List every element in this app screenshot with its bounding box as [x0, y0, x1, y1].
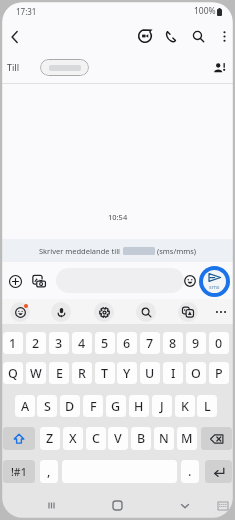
button[interactable]: Search	[136, 302, 156, 322]
button[interactable]: 6	[117, 332, 137, 354]
button[interactable]: Stickers	[178, 302, 198, 322]
button[interactable]: Z	[40, 427, 60, 450]
button[interactable]: Gallery	[29, 272, 48, 290]
staticText: D	[65, 398, 75, 415]
button[interactable]: 9	[186, 332, 206, 354]
button[interactable]: Search	[187, 25, 209, 47]
staticText: 1	[9, 335, 17, 352]
staticText: E	[56, 365, 63, 382]
staticText: Y	[123, 365, 131, 382]
button[interactable]: L	[197, 395, 217, 417]
button[interactable]: 7	[140, 332, 160, 354]
staticText: H	[134, 398, 144, 415]
staticText: U	[145, 365, 155, 382]
button[interactable]: W	[26, 362, 46, 384]
button[interactable]: P	[209, 362, 229, 384]
button[interactable]: E	[49, 362, 69, 384]
staticText: 10:54	[108, 212, 128, 222]
staticText: J	[160, 398, 164, 415]
button[interactable]: 1	[3, 332, 23, 354]
button[interactable]: .	[181, 460, 199, 483]
staticText: N	[159, 430, 169, 447]
button[interactable]: Settings	[94, 302, 114, 322]
button[interactable]: B	[131, 427, 151, 450]
staticText: sms	[209, 283, 220, 290]
button[interactable]: Q	[3, 362, 23, 384]
staticText: V	[114, 430, 122, 447]
button[interactable]: O	[186, 362, 206, 384]
button[interactable]: Add attachment	[6, 272, 24, 290]
button[interactable]: H	[129, 395, 149, 417]
staticText: ,	[47, 463, 51, 480]
button[interactable]: U	[140, 362, 160, 384]
button[interactable]: 3	[49, 332, 69, 354]
button[interactable]: X	[63, 427, 83, 450]
staticText: !#1	[11, 465, 27, 479]
staticText: B	[137, 430, 146, 447]
button[interactable]: Video call	[134, 25, 156, 47]
button[interactable]: Recents	[42, 496, 61, 515]
staticText: 100%	[194, 5, 216, 17]
staticText: K	[181, 398, 189, 415]
button[interactable]: Call	[159, 25, 181, 47]
button[interactable]: M	[177, 427, 197, 450]
button[interactable]: I	[163, 362, 183, 384]
button[interactable]: T	[95, 362, 115, 384]
button[interactable]: 8	[163, 332, 183, 354]
button[interactable]: Emoji	[183, 274, 197, 288]
button[interactable]: Hide keyboard	[175, 496, 194, 515]
button[interactable]: C	[86, 427, 106, 450]
staticText: (sms/mms)	[157, 246, 197, 256]
button[interactable]: Home	[108, 496, 127, 515]
button[interactable]: More options	[214, 25, 234, 47]
button[interactable]: F	[83, 395, 103, 417]
button[interactable]: !#1	[3, 460, 35, 483]
staticText: .	[188, 463, 192, 480]
button[interactable]: G	[106, 395, 126, 417]
button[interactable]: Keyboard settings	[214, 498, 231, 513]
button[interactable]: 5	[95, 332, 115, 354]
button[interactable]: 2	[26, 332, 46, 354]
staticText: I	[171, 365, 176, 382]
button[interactable]: J	[152, 395, 172, 417]
button[interactable]: ,	[40, 460, 58, 483]
staticText: Skriver meddelande till	[39, 246, 121, 256]
button[interactable]: Send SMS	[199, 266, 230, 297]
button[interactable]: Voice input	[51, 302, 71, 322]
staticText: O	[191, 365, 201, 382]
button[interactable]: Add recipient	[209, 58, 229, 78]
staticText: G	[111, 398, 121, 415]
staticText: Q	[8, 365, 18, 382]
staticText: 2	[32, 335, 40, 352]
button[interactable]: 4	[72, 332, 92, 354]
staticText: A	[21, 398, 30, 415]
staticText: 5	[101, 335, 109, 352]
button[interactable]: N	[154, 427, 174, 450]
button[interactable]: More	[214, 305, 228, 319]
staticText: 9	[192, 335, 200, 352]
staticText: 4	[78, 335, 86, 352]
staticText: W	[30, 365, 42, 382]
button[interactable]: R	[72, 362, 92, 384]
staticText: 6	[123, 335, 131, 352]
staticText: 7	[146, 335, 154, 352]
staticText: 0	[215, 335, 223, 352]
button[interactable]: A	[15, 395, 35, 417]
staticText: R	[78, 365, 86, 382]
button[interactable]: Shift	[3, 427, 35, 450]
button[interactable]: D	[60, 395, 80, 417]
button[interactable]	[40, 59, 89, 76]
button[interactable]: Enter	[205, 460, 232, 483]
staticText: C	[92, 430, 100, 447]
button[interactable]: S	[37, 395, 57, 417]
button[interactable]: Emoji	[10, 302, 30, 322]
button[interactable]: K	[175, 395, 195, 417]
button[interactable]: Y	[117, 362, 137, 384]
button[interactable]: V	[108, 427, 128, 450]
staticText: S	[44, 398, 51, 415]
button[interactable]: Back	[4, 26, 24, 47]
button[interactable]: Backspace	[201, 427, 232, 450]
button[interactable]: 0	[209, 332, 229, 354]
